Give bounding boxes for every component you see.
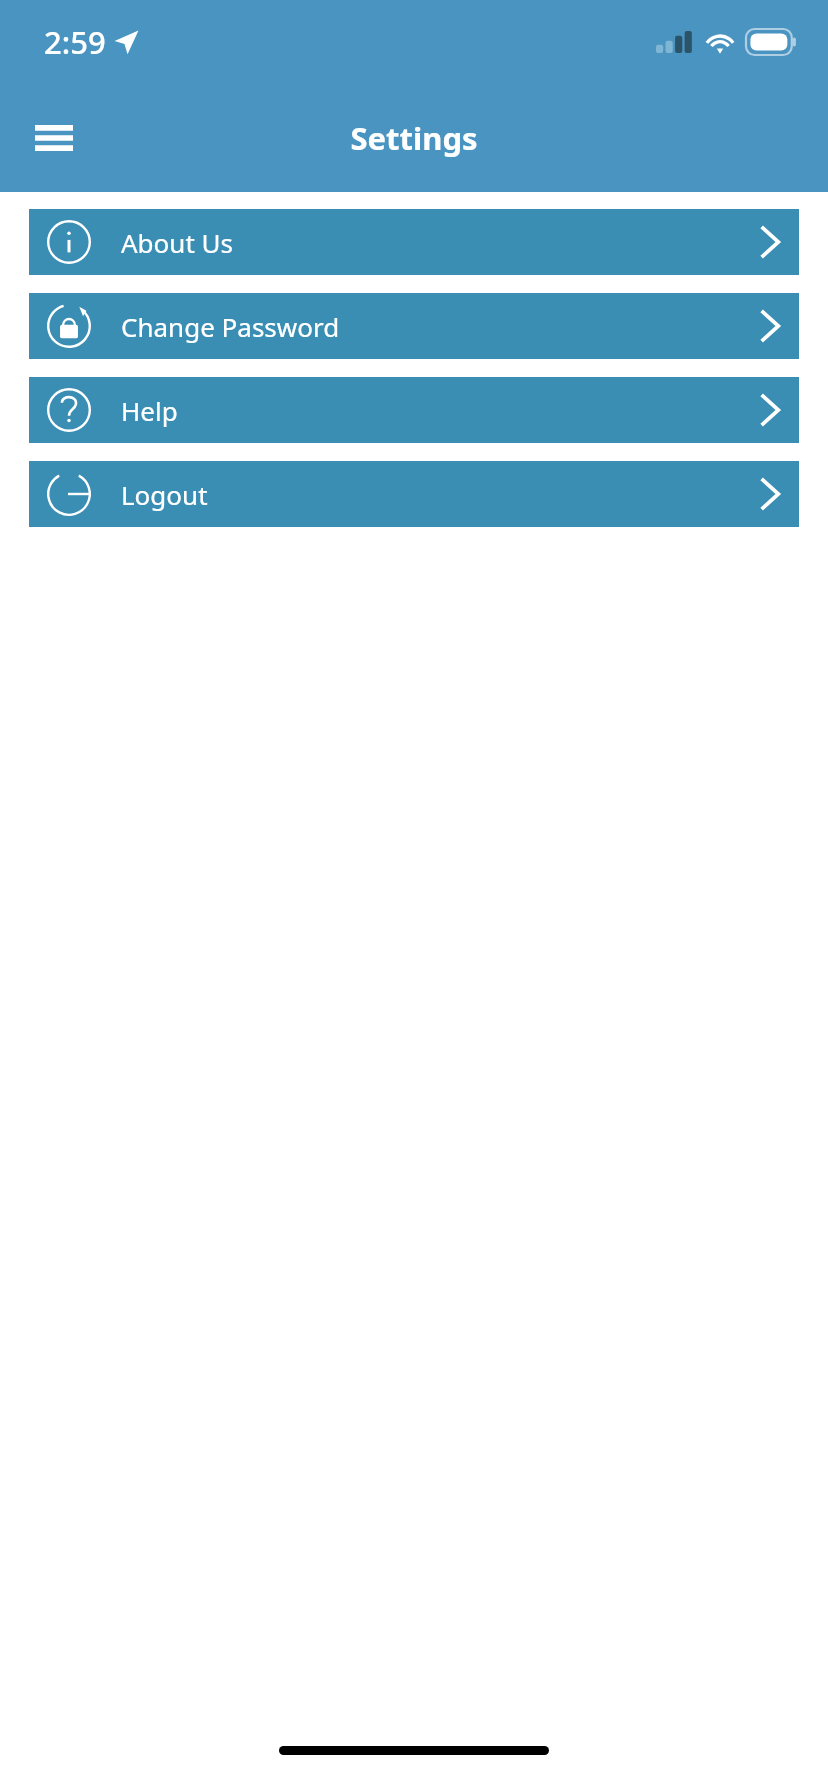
button[interactable]: Open navigation menu bbox=[26, 110, 82, 166]
staticText: Help bbox=[121, 393, 759, 428]
button[interactable]: About Us bbox=[29, 209, 799, 275]
staticText: Change Password bbox=[121, 309, 759, 344]
button[interactable]: Change Password bbox=[29, 293, 799, 359]
button[interactable]: Logout bbox=[29, 461, 799, 527]
button[interactable]: Help bbox=[29, 377, 799, 443]
staticText: About Us bbox=[121, 225, 759, 260]
staticText: Settings bbox=[350, 117, 478, 159]
staticText: 2:59 bbox=[44, 21, 106, 63]
staticText: Logout bbox=[121, 477, 759, 512]
